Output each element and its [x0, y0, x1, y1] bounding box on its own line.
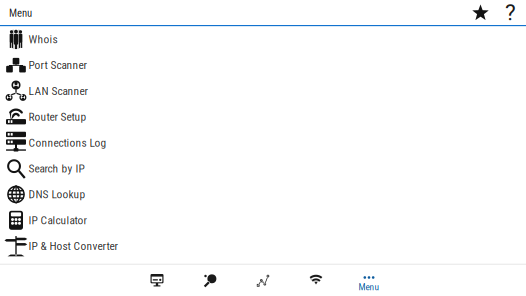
button[interactable]: Wi-Fi [289, 265, 342, 296]
button[interactable]: IP & Host Converter [0, 233, 526, 259]
button[interactable] [0, 259, 526, 285]
button[interactable]: Connections Log [0, 130, 526, 156]
button[interactable]: LAN Scanner [0, 78, 526, 104]
button[interactable]: Search by IP [0, 156, 526, 182]
button[interactable]: Help [498, 0, 523, 25]
staticText: Router Setup [28, 110, 86, 124]
button[interactable]: Dashboard [130, 265, 183, 296]
button[interactable]: Menu [342, 265, 395, 296]
button[interactable]: Favorites [463, 0, 498, 25]
button[interactable]: DNS Lookup [0, 181, 526, 207]
staticText: Connections Log [28, 136, 106, 149]
button[interactable]: Port Scanner [0, 52, 526, 78]
button[interactable]: IP Calculator [0, 207, 526, 233]
staticText: ? [505, 0, 516, 26]
staticText: Menu [358, 281, 379, 292]
button[interactable]: Router Setup [0, 104, 526, 130]
staticText: Port Scanner [28, 58, 86, 72]
staticText: Whois [28, 33, 57, 46]
staticText: Menu [9, 7, 32, 19]
button[interactable]: Whois [0, 26, 526, 52]
staticText: DNS Lookup [28, 188, 85, 201]
button[interactable]: Traceroute [236, 265, 289, 296]
staticText: IP & Host Converter [28, 239, 117, 253]
staticText: Search by IP [28, 162, 84, 175]
button[interactable]: Ping [183, 265, 236, 296]
staticText: LAN Scanner [28, 84, 87, 98]
staticText: IP Calculator [28, 214, 86, 227]
